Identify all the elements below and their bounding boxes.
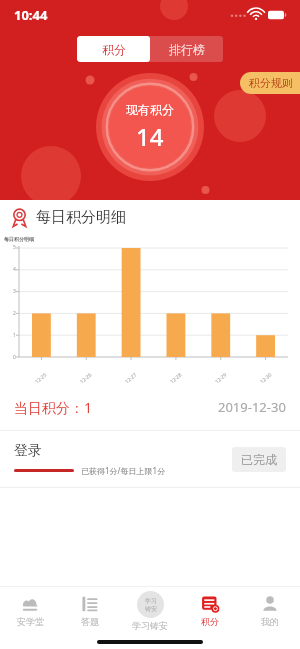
staticText: 积分	[102, 42, 126, 57]
staticText: 1	[13, 332, 16, 339]
staticText: 0	[13, 354, 16, 361]
staticText: 学习 铸安	[145, 597, 157, 613]
staticText: 3	[13, 288, 16, 295]
staticText: 积分规则	[249, 76, 293, 90]
staticText: 2019-12-30	[218, 398, 286, 416]
button[interactable]: 登录	[0, 431, 300, 487]
staticText: 5	[13, 244, 16, 251]
staticText: 登录	[14, 442, 42, 460]
other: 安学堂	[21, 595, 39, 613]
staticText: 积分	[201, 616, 219, 627]
button[interactable]: 已完成	[232, 447, 286, 472]
staticText: 10:44	[14, 6, 48, 24]
other: 学习铸安	[137, 591, 164, 618]
staticText: 排行榜	[169, 42, 205, 57]
staticText: 12-26	[78, 371, 94, 386]
button[interactable]: 积分规则	[240, 72, 300, 94]
button[interactable]: 答题	[60, 587, 120, 635]
button[interactable]: 积分	[77, 36, 150, 62]
other: 我的	[261, 595, 279, 613]
staticText: 12-29	[213, 371, 229, 386]
staticText: 12-30	[258, 371, 274, 386]
button[interactable]: 我的	[240, 587, 300, 635]
button[interactable]: 学习铸安	[120, 587, 180, 635]
staticText: 现有积分	[126, 102, 174, 117]
staticText: 答题	[81, 616, 99, 627]
staticText: 我的	[261, 616, 279, 627]
staticText: 每日积分明细	[4, 236, 34, 242]
staticText: 14	[136, 120, 164, 153]
staticText: 安学堂	[17, 616, 44, 627]
button[interactable]: 排行榜	[150, 36, 223, 62]
staticText: 已完成	[241, 452, 277, 467]
button[interactable]: 积分	[180, 587, 240, 635]
other: 积分	[201, 595, 219, 613]
staticText: 12-28	[168, 371, 184, 386]
other: 答题	[81, 595, 99, 613]
staticText: 12-27	[123, 371, 139, 386]
staticText: 2	[13, 310, 16, 317]
staticText: 12-25	[33, 371, 49, 386]
staticText: 当日积分：1	[14, 398, 93, 417]
staticText: 学习铸安	[132, 620, 168, 631]
button[interactable]: 安学堂	[0, 587, 60, 635]
staticText: 4	[13, 266, 16, 273]
staticText: 每日积分明细	[36, 208, 126, 227]
staticText: 已获得1分/每日上限1分	[81, 465, 166, 476]
